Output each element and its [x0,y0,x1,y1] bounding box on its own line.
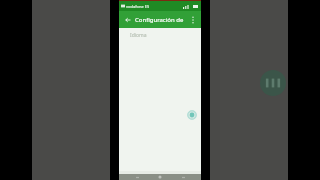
button[interactable]: More options [188,15,198,25]
button[interactable]: Recent apps [178,174,188,180]
button[interactable]: Back [122,14,133,25]
staticText: Configuración de AOSP... [135,16,188,24]
staticText: Idioma [130,32,147,39]
button[interactable]: Back [132,174,142,180]
button[interactable]: Home [155,174,165,180]
button[interactable]: Idioma [119,30,201,40]
staticText: vodafone ES [126,4,150,9]
